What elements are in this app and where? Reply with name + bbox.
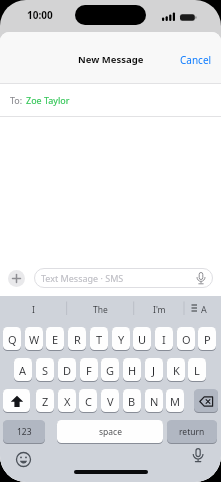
button[interactable] — [192, 448, 204, 463]
staticText: return — [179, 426, 205, 438]
staticText: Zoe Taylor — [26, 94, 70, 106]
staticText: 10:00 — [27, 8, 53, 22]
staticText: G — [106, 363, 115, 378]
staticText: Z — [42, 394, 49, 409]
staticText: Q — [8, 332, 17, 347]
button[interactable]: Text Message · SMS — [34, 268, 213, 288]
button[interactable]: J — [145, 358, 163, 382]
staticText: New Message — [78, 53, 144, 66]
button[interactable]: P — [198, 327, 216, 351]
button[interactable]: Q — [3, 327, 21, 351]
staticText: S — [42, 363, 49, 378]
button[interactable] — [3, 389, 30, 413]
staticText: space — [99, 426, 122, 438]
button[interactable]: N — [145, 389, 163, 413]
staticText: 123 — [17, 426, 32, 438]
staticText: R — [74, 332, 81, 347]
button[interactable]: L — [188, 358, 206, 382]
button[interactable]: G — [101, 358, 119, 382]
button[interactable]: R — [68, 327, 86, 351]
staticText: P — [204, 332, 211, 347]
button[interactable]: H — [123, 358, 141, 382]
staticText: A — [201, 303, 207, 315]
button[interactable]: O — [177, 327, 195, 351]
button[interactable]: F — [80, 358, 98, 382]
button[interactable] — [194, 389, 218, 413]
staticText: N — [150, 394, 159, 409]
button[interactable] — [16, 452, 31, 467]
button[interactable]: D — [58, 358, 76, 382]
button[interactable]: To: — [0, 84, 221, 116]
button[interactable]: return — [167, 420, 217, 444]
staticText: Text Message · SMS — [41, 272, 124, 284]
staticText: K — [173, 363, 180, 378]
staticText: E — [52, 332, 59, 347]
button[interactable]: K — [167, 358, 185, 382]
staticText: I'm — [153, 304, 166, 316]
staticText: Y — [118, 332, 125, 347]
button[interactable]: A — [14, 358, 32, 382]
staticText: F — [86, 363, 92, 378]
staticText: Cancel — [180, 53, 212, 67]
button[interactable]: M — [166, 389, 184, 413]
button[interactable]: V — [101, 389, 119, 413]
button[interactable]: E — [46, 327, 64, 351]
button[interactable]: B — [123, 389, 141, 413]
staticText: M — [170, 394, 180, 409]
staticText: W — [29, 332, 40, 347]
button[interactable] — [8, 270, 25, 287]
staticText: L — [194, 363, 200, 378]
button[interactable]: Z — [36, 389, 54, 413]
button[interactable]: W — [25, 327, 43, 351]
staticText: C — [85, 394, 92, 409]
staticText: U — [138, 332, 147, 347]
button[interactable]: I — [155, 327, 173, 351]
staticText: V — [107, 394, 114, 409]
button[interactable]: Y — [112, 327, 130, 351]
button[interactable]: X — [58, 389, 76, 413]
staticText: D — [63, 363, 72, 378]
button[interactable]: The — [67, 299, 134, 321]
staticText: To: — [10, 94, 23, 106]
staticText: B — [128, 394, 136, 409]
staticText: T — [96, 332, 103, 347]
staticText: X — [64, 394, 71, 409]
staticText: J — [152, 363, 156, 378]
staticText: H — [128, 363, 137, 378]
button[interactable]: space — [57, 420, 163, 444]
staticText: I — [32, 304, 35, 316]
button[interactable]: Cancel — [180, 53, 212, 67]
staticText: The — [93, 304, 108, 316]
button[interactable]: T — [90, 327, 108, 351]
button[interactable]: C — [79, 389, 97, 413]
button[interactable]: U — [133, 327, 151, 351]
staticText: O — [182, 332, 191, 347]
button[interactable]: I — [0, 299, 67, 321]
staticText: I — [162, 332, 166, 347]
staticText: A — [19, 363, 27, 378]
button[interactable]: 123 — [3, 420, 45, 444]
button[interactable]: S — [36, 358, 54, 382]
button[interactable]: I'm — [134, 299, 184, 321]
